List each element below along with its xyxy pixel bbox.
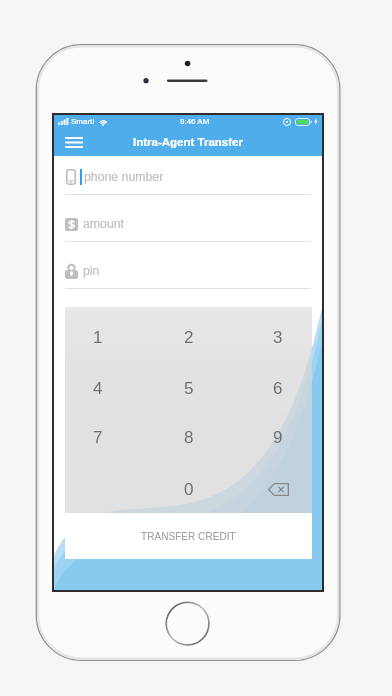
button[interactable]: phone number	[65, 162, 312, 192]
button[interactable]	[234, 410, 313, 461]
button[interactable]	[144, 359, 234, 411]
staticText: 9:46 AM	[180, 117, 210, 126]
button[interactable]: Backspace	[234, 461, 313, 513]
staticText: Intra-Agent Transfer	[133, 136, 243, 149]
staticText: phone number	[84, 170, 164, 184]
button[interactable]: TRANSFER CREDIT	[65, 513, 312, 559]
staticText: 8	[184, 428, 194, 447]
button[interactable]: Open navigation menu	[60, 130, 88, 154]
staticText: 3	[273, 328, 283, 347]
button[interactable]	[234, 359, 313, 411]
button[interactable]	[65, 359, 144, 411]
staticText: 1	[93, 328, 103, 347]
staticText: Smart!	[71, 117, 95, 126]
button[interactable]	[144, 461, 234, 513]
staticText: 6	[273, 379, 283, 398]
button[interactable]	[65, 307, 144, 359]
button[interactable]	[234, 307, 313, 359]
staticText: 7	[93, 428, 103, 447]
button[interactable]	[144, 307, 234, 359]
button[interactable]	[65, 410, 144, 461]
staticText: 0	[184, 480, 194, 499]
button[interactable]: pin	[65, 256, 312, 286]
staticText: pin	[83, 264, 100, 278]
staticText: 2	[184, 328, 194, 347]
staticText: TRANSFER CREDIT	[141, 531, 236, 542]
staticText: 4	[93, 379, 103, 398]
button[interactable]	[144, 410, 234, 461]
staticText: amount	[83, 217, 125, 231]
button[interactable]: amount	[65, 209, 312, 239]
staticText: 5	[184, 379, 194, 398]
staticText: 9	[273, 428, 283, 447]
